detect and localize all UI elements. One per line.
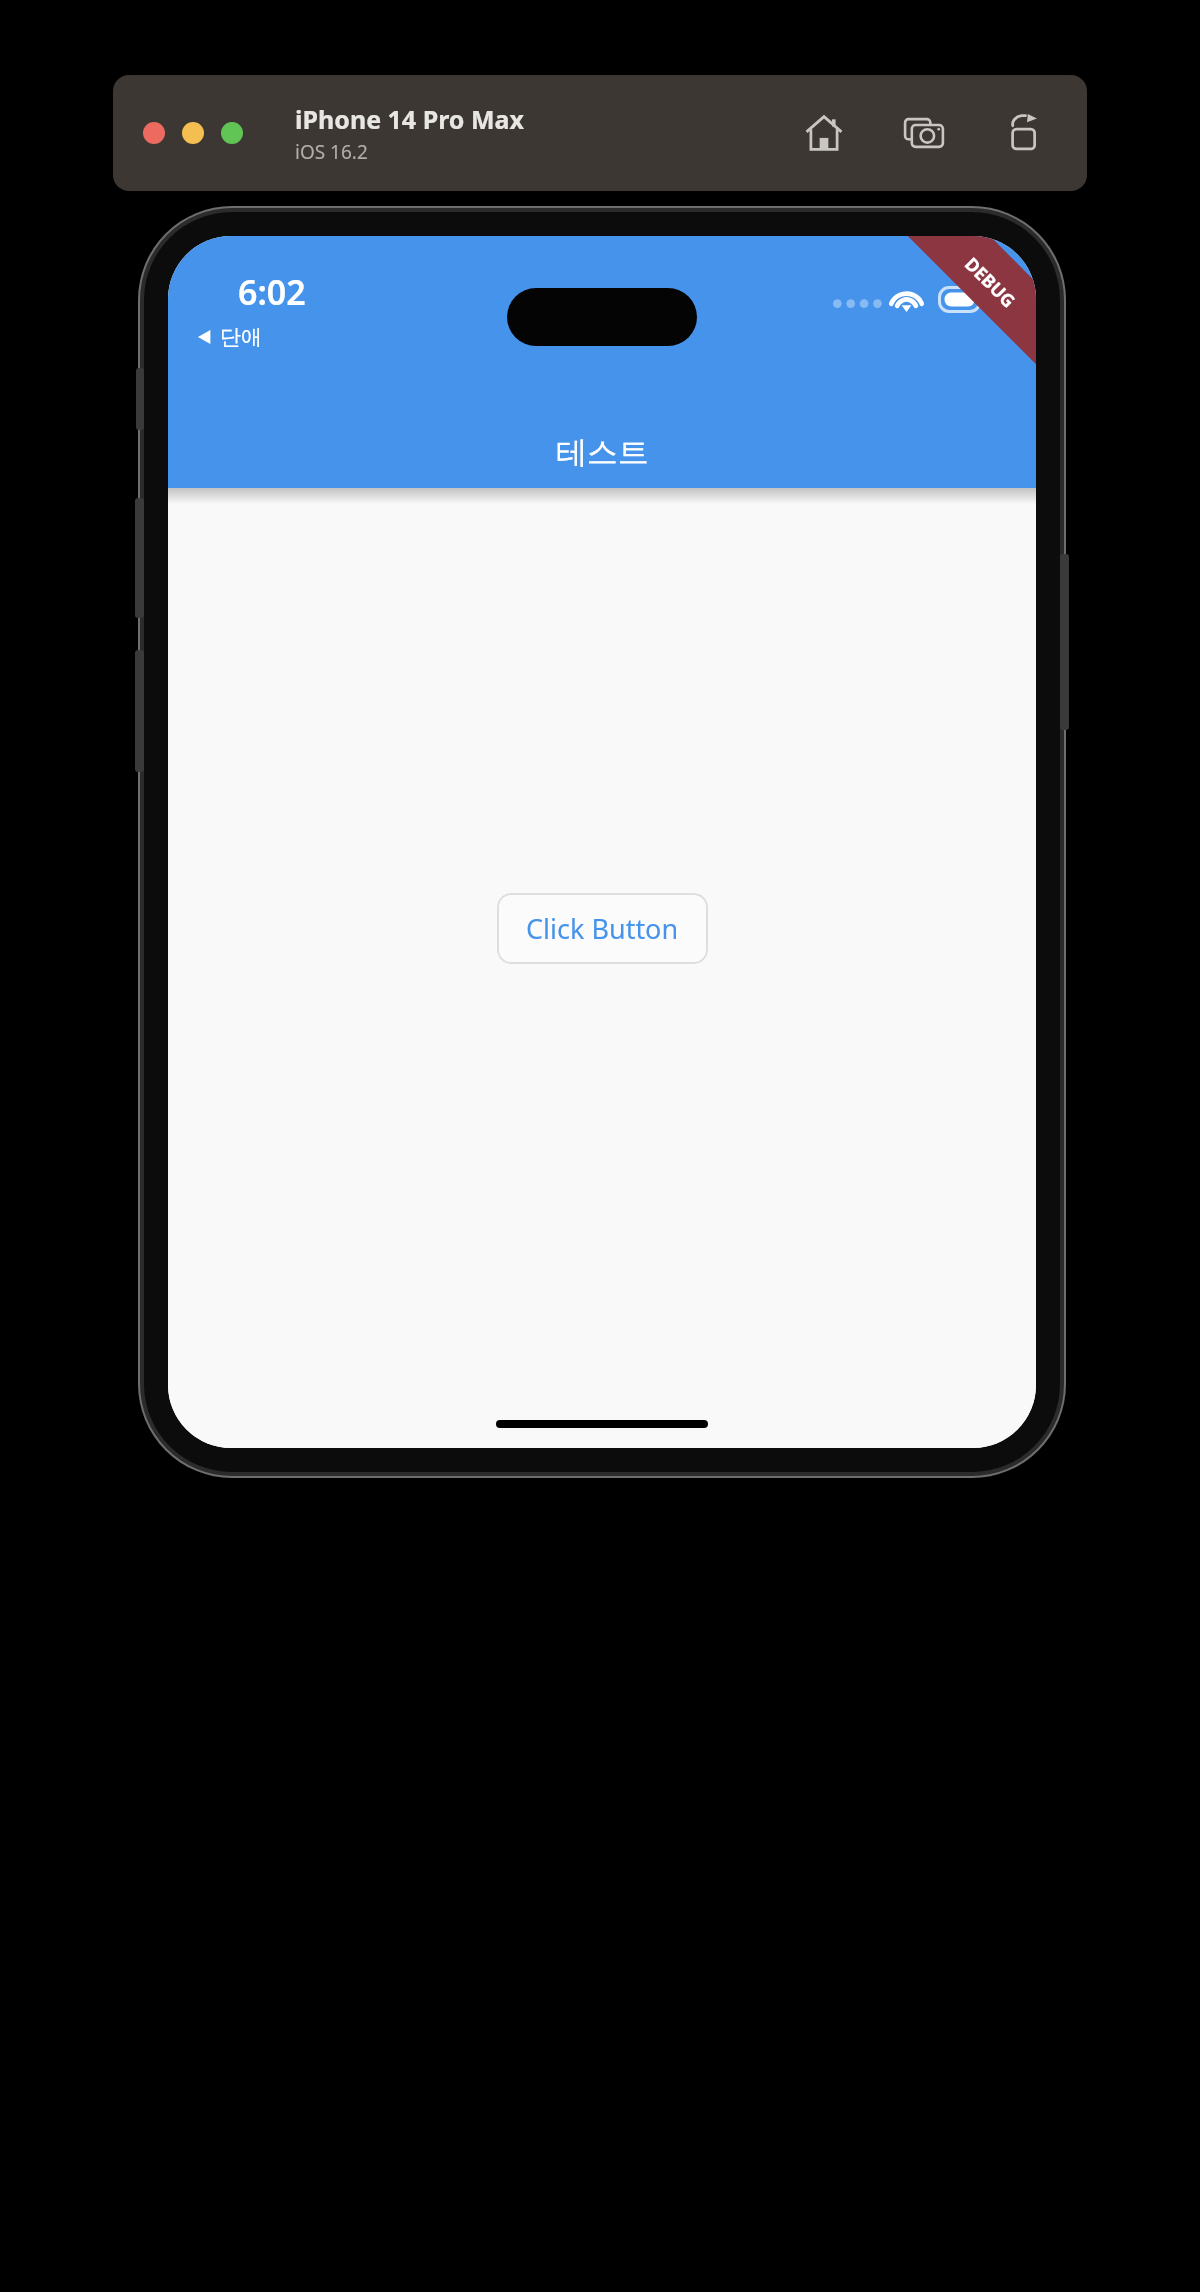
staticText: iPhone 14 Pro Max xyxy=(295,102,524,136)
staticText: 6:02 xyxy=(238,269,306,315)
staticText: DEBUG xyxy=(959,252,1021,313)
button[interactable]: Home xyxy=(797,106,851,160)
button[interactable]: Minimize xyxy=(182,122,204,144)
staticText: iOS 16.2 xyxy=(295,139,368,165)
button[interactable]: Rotate xyxy=(997,106,1051,160)
button[interactable]: Click Button xyxy=(497,893,708,964)
staticText: Click Button xyxy=(526,910,679,947)
button[interactable]: Zoom xyxy=(221,122,243,144)
button[interactable]: 단애 xyxy=(190,318,268,356)
staticText: 테스트 xyxy=(556,433,649,472)
staticText: 단애 xyxy=(220,324,262,350)
button[interactable]: Screenshot xyxy=(897,106,951,160)
button[interactable]: Close xyxy=(143,122,165,144)
